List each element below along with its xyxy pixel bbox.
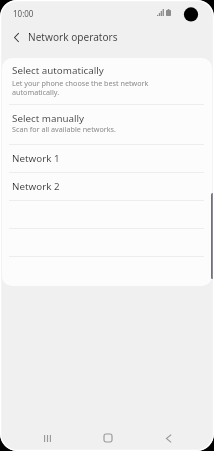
staticText: Network operators xyxy=(28,30,118,44)
staticText: Select manually xyxy=(12,112,85,125)
button[interactable]: Navigate up xyxy=(3,24,29,50)
button[interactable]: Select automatically xyxy=(2,58,212,104)
button[interactable]: Recent apps xyxy=(29,420,65,451)
staticText: Network 1 xyxy=(12,152,60,165)
staticText: Select automatically xyxy=(12,64,104,77)
staticText: Network 2 xyxy=(12,180,60,193)
staticText: 10:00 xyxy=(13,8,34,19)
button[interactable]: Select manually xyxy=(2,105,212,144)
button[interactable]: Back xyxy=(150,420,186,451)
button[interactable]: Network 2 xyxy=(2,173,212,200)
button[interactable]: Home xyxy=(90,420,126,451)
button[interactable]: Network 1 xyxy=(2,145,212,172)
staticText: Let your phone choose the best network a… xyxy=(12,78,190,97)
staticText: Scan for all available networks. xyxy=(12,124,116,134)
